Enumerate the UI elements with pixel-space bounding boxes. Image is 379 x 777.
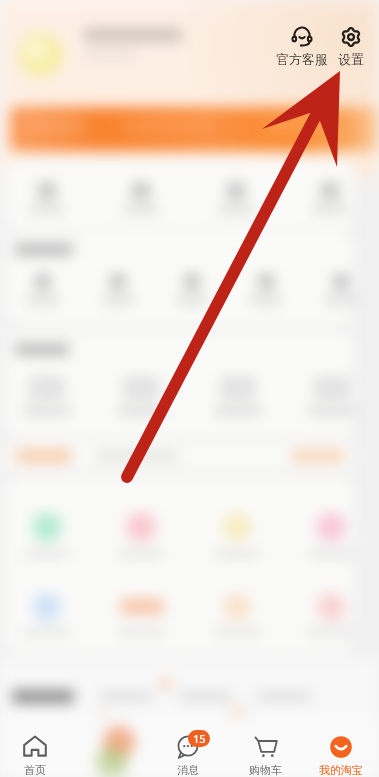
staticText: 购物车: [249, 763, 282, 777]
staticText: 我的淘宝: [319, 763, 363, 777]
button[interactable]: 首页: [0, 710, 72, 777]
staticText: 消息: [177, 763, 199, 777]
staticText: 设置: [337, 52, 365, 68]
button[interactable]: Settings: [337, 22, 365, 72]
staticText: 首页: [24, 763, 46, 777]
button[interactable]: 我的淘宝: [304, 710, 378, 777]
button[interactable]: 15: [151, 710, 225, 777]
staticText: 官方客服: [276, 52, 328, 68]
button[interactable]: 购物车: [228, 710, 302, 777]
button[interactable]: Official customer service: [276, 22, 328, 72]
button[interactable]: Live: [76, 710, 150, 777]
staticText: 15: [193, 731, 206, 746]
